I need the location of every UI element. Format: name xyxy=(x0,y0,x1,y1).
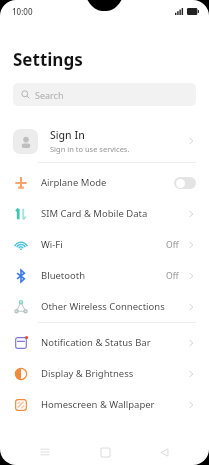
staticText: Off xyxy=(166,239,179,251)
staticText: Off xyxy=(166,270,179,282)
staticText: Bluetooth xyxy=(41,269,86,282)
staticText: Search xyxy=(35,89,64,101)
button[interactable]: Notification & Status Bar xyxy=(0,327,209,358)
button[interactable]: Homescreen & Wallpaper xyxy=(0,389,209,420)
button[interactable]: Recent apps xyxy=(30,439,60,465)
staticText: Display & Brightness xyxy=(41,367,134,380)
staticText: 10:00 xyxy=(12,6,33,17)
staticText: Homescreen & Wallpaper xyxy=(41,398,155,411)
staticText: Settings xyxy=(13,48,83,71)
button[interactable]: Airplane Mode xyxy=(0,167,209,198)
staticText: Airplane Mode xyxy=(41,176,107,189)
staticText: Sign in to use services. xyxy=(50,144,130,154)
button[interactable]: Airplane mode toggle xyxy=(174,177,196,189)
button[interactable]: Sign In xyxy=(0,120,209,162)
button[interactable]: Search xyxy=(13,83,196,106)
button[interactable]: SIM Card & Mobile Data xyxy=(0,198,209,229)
button[interactable]: Other Wireless Connections xyxy=(0,291,209,322)
button[interactable]: Back xyxy=(149,439,179,465)
staticText: Other Wireless Connections xyxy=(41,300,165,313)
button[interactable]: Display & Brightness xyxy=(0,358,209,389)
staticText: Sign In xyxy=(50,128,85,142)
staticText: SIM Card & Mobile Data xyxy=(41,207,148,220)
button[interactable]: Wi-Fi xyxy=(0,229,209,260)
staticText: Notification & Status Bar xyxy=(41,336,151,349)
staticText: Wi-Fi xyxy=(41,238,63,251)
button[interactable]: Home xyxy=(90,439,120,465)
button[interactable]: Bluetooth xyxy=(0,260,209,291)
